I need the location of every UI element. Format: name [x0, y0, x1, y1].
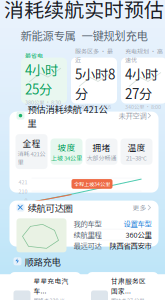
staticText: 0	[24, 196, 27, 204]
staticText: 陕西省西安市	[109, 240, 151, 251]
staticText: 4小时27分	[125, 64, 158, 103]
staticText: 全程上坡34公里	[74, 180, 110, 188]
staticText: 消耗 421公里	[17, 149, 45, 167]
staticText: 坡度	[57, 141, 75, 153]
button[interactable]: 充电规划 · 高速优	[121, 58, 167, 104]
staticText: 甘肃服务区国家...	[111, 276, 146, 295]
button[interactable]: 坡度	[50, 138, 82, 165]
staticText: 服务区多 · 最近	[75, 47, 113, 64]
button[interactable]: 最远可达	[73, 240, 151, 251]
button[interactable]: 拥堵	[85, 138, 117, 165]
button[interactable]: 最省电	[21, 58, 67, 104]
staticText: 未开空调	[118, 110, 146, 121]
button[interactable]: 更多	[132, 203, 151, 212]
staticText: 充电规划 · 高速优	[125, 47, 163, 64]
staticText: 大部分畅通	[86, 153, 116, 162]
staticText: 上坡 34公里	[51, 153, 82, 162]
button[interactable]: 我的车型	[73, 218, 151, 229]
staticText: 续航里程	[73, 229, 101, 240]
staticText: 更多	[132, 203, 146, 212]
staticText: 340公里 · 8:00	[125, 103, 161, 110]
button[interactable]: 星星充电汽车...	[9, 272, 81, 300]
button[interactable]: 甘肃服务区国家...	[87, 272, 158, 300]
button[interactable]: 温度	[120, 138, 152, 165]
staticText: 最省电	[25, 51, 43, 60]
staticText: 顺路充电	[24, 255, 60, 268]
staticText: 拥堵	[92, 141, 110, 153]
staticText: 全程	[22, 137, 40, 149]
staticText: 360公里	[125, 229, 151, 240]
staticText: 我的车型	[73, 218, 101, 229]
staticText: 4小时25分	[25, 60, 58, 98]
staticText: 421	[18, 178, 27, 186]
staticText: 预估消耗续航 421公里	[27, 102, 107, 129]
staticText: 消耗续航实时预估	[4, 0, 164, 23]
staticText: 星星充电汽车...	[33, 276, 68, 295]
staticText: 距终点 230 米 1000元/度	[33, 296, 65, 300]
button[interactable]: 服务区多 · 最近	[71, 58, 117, 104]
button[interactable]: 续航里程	[73, 229, 151, 240]
staticText: 续航可达圈	[27, 201, 72, 214]
staticText: 210	[18, 187, 27, 195]
staticText: 480公里 · 9:16	[75, 103, 111, 110]
staticText: 21~38°C	[126, 153, 147, 162]
staticText: 新能源专属 一键规划充电	[20, 27, 147, 44]
staticText: 380公里 · 8:30	[25, 98, 61, 106]
staticText: 设置车型	[123, 218, 151, 229]
button[interactable]: 未开空调	[118, 110, 151, 121]
staticText: 最远可达	[73, 240, 101, 251]
staticText: 温度	[127, 141, 145, 153]
staticText: 距站点 27 公里 0.87元/度	[111, 296, 145, 300]
staticText: 5小时8分	[75, 64, 115, 103]
button[interactable]: 全程	[15, 134, 47, 169]
